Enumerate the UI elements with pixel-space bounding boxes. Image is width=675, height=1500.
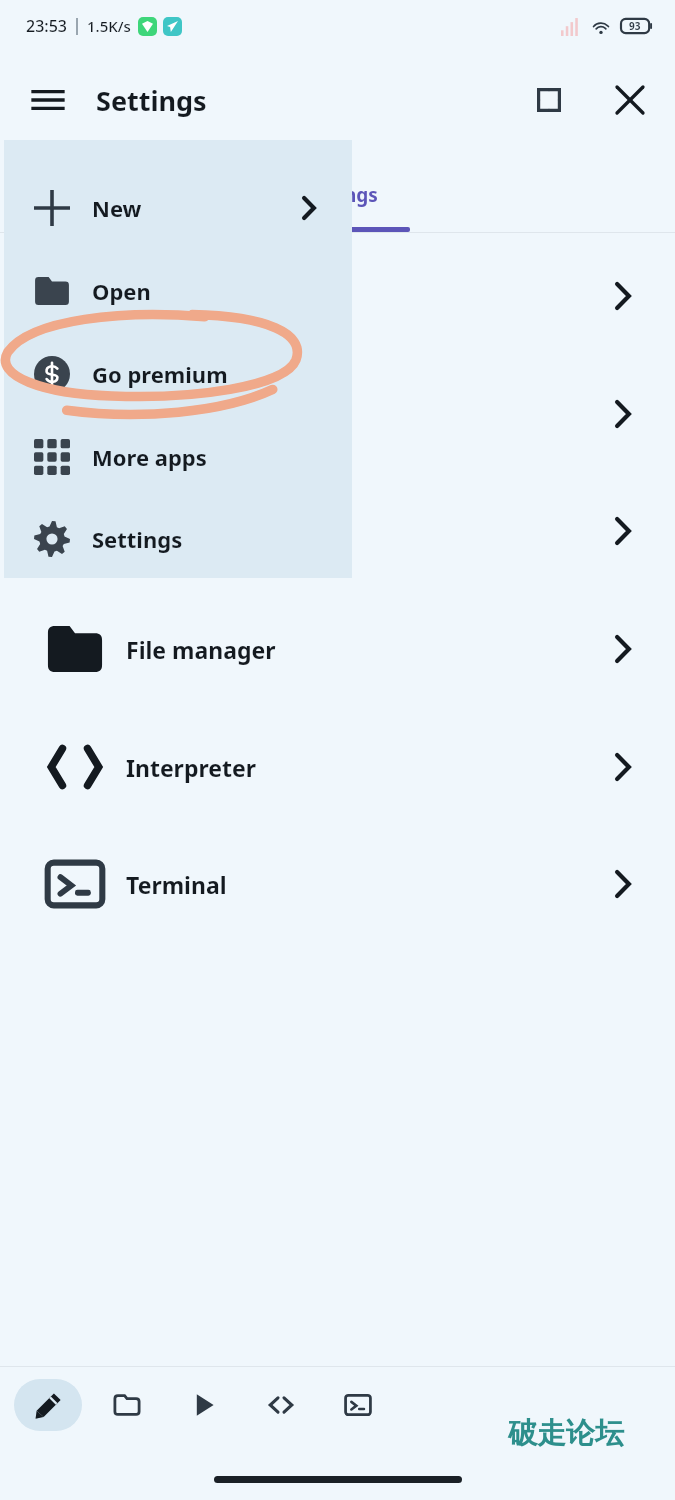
button[interactable]: Settings xyxy=(4,497,352,580)
button[interactable]: Open xyxy=(4,249,352,332)
staticText: Terminal xyxy=(126,869,227,900)
button[interactable]: Files xyxy=(100,1379,154,1431)
staticText: 破走论坛 xyxy=(508,1415,624,1452)
button[interactable] xyxy=(0,256,675,336)
staticText: Go premium xyxy=(92,359,228,389)
button[interactable]: New xyxy=(4,166,352,249)
button[interactable]: Fullscreen xyxy=(523,74,575,126)
staticText: Settings xyxy=(92,524,183,554)
button[interactable]: Go premium xyxy=(4,332,352,415)
staticText: New xyxy=(92,193,142,223)
button[interactable]: Run xyxy=(177,1379,231,1431)
staticText: Open xyxy=(92,276,151,306)
button[interactable]: Terminal xyxy=(331,1379,385,1431)
button[interactable]: File manager xyxy=(0,607,675,691)
staticText: Interpreter xyxy=(126,752,256,783)
staticText: More apps xyxy=(92,442,207,472)
staticText: Settings xyxy=(96,82,207,119)
button[interactable] xyxy=(0,374,675,454)
button[interactable]: Interpreter xyxy=(0,725,675,809)
button[interactable]: Close xyxy=(603,73,657,127)
button[interactable]: More apps xyxy=(4,415,352,498)
button[interactable]: Editor xyxy=(14,1379,82,1431)
staticText: 1.5K/s xyxy=(87,16,131,36)
button[interactable]: Terminal xyxy=(0,842,675,926)
staticText: 93 xyxy=(629,19,641,33)
staticText: 23:53 xyxy=(26,15,67,37)
staticText: Settings xyxy=(300,182,378,208)
button[interactable]: Open navigation menu xyxy=(20,72,76,128)
button[interactable] xyxy=(0,491,675,571)
button[interactable]: Code xyxy=(254,1379,308,1431)
staticText: File manager xyxy=(126,634,276,665)
